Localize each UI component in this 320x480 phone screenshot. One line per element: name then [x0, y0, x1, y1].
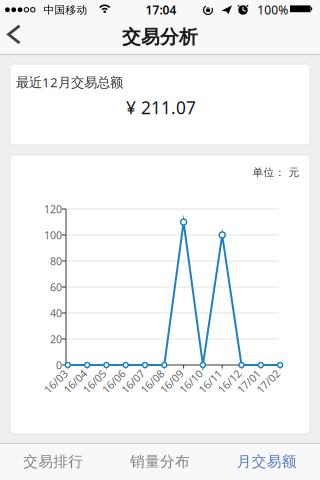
button[interactable]: 月交易额 [213, 443, 320, 480]
button[interactable]: 销量分布 [107, 443, 213, 480]
staticText: 交易排行 [23, 452, 83, 470]
staticText: 单位： 元 [252, 166, 299, 179]
staticText: 100 [44, 228, 62, 242]
staticText: 17:04 [145, 2, 176, 18]
staticText: 月交易额 [237, 452, 297, 470]
staticText: 销量分布 [130, 452, 190, 470]
staticText: 17/02 [254, 374, 282, 389]
staticText: 16/12 [215, 374, 243, 389]
staticText: 交易分析 [122, 25, 198, 48]
staticText: 中国移动 [43, 3, 87, 16]
staticText: 16/06 [100, 374, 128, 389]
staticText: 60 [50, 280, 62, 294]
staticText: 16/11 [196, 374, 224, 389]
button[interactable]: 交易排行 [0, 443, 107, 480]
staticText: 80 [50, 254, 62, 268]
staticText: 120 [44, 202, 62, 216]
staticText: 16/10 [177, 374, 205, 389]
staticText: 0 [56, 358, 62, 372]
staticText: 最近12月交易总额 [16, 73, 123, 91]
staticText: 16/09 [158, 374, 186, 389]
staticText: 17/01 [235, 374, 263, 389]
staticText: 16/08 [138, 374, 166, 389]
staticText: 16/04 [61, 374, 89, 389]
staticText: 16/03 [42, 374, 70, 389]
staticText: ¥ 211.07 [126, 96, 196, 119]
staticText: 100% [257, 2, 288, 18]
button[interactable]: Back [0, 20, 44, 54]
staticText: 20 [50, 332, 62, 346]
staticText: 16/05 [80, 374, 108, 389]
staticText: 40 [50, 306, 62, 320]
staticText: 16/07 [119, 374, 147, 389]
